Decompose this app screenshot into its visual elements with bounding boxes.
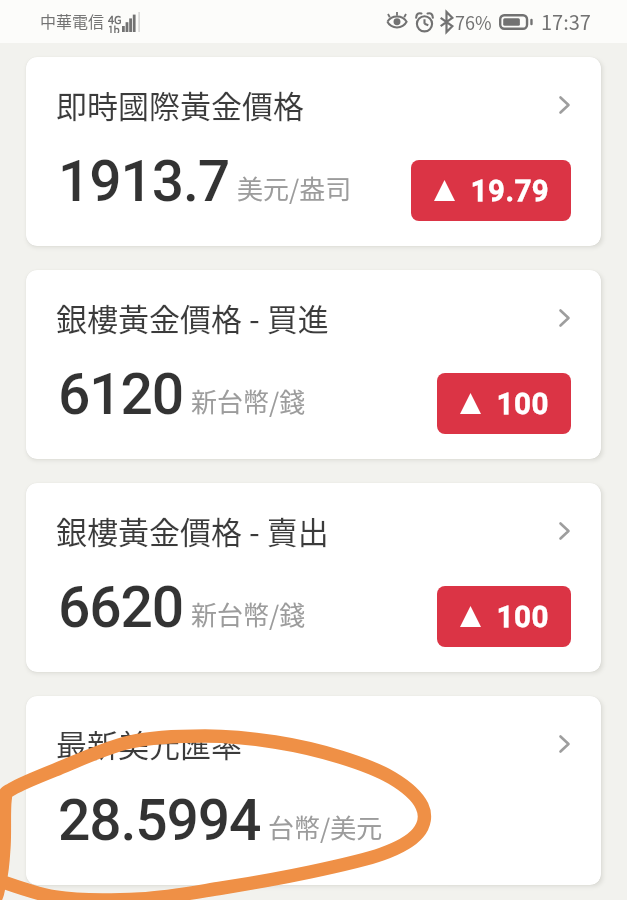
staticText: 台幣/美元 <box>268 808 383 846</box>
staticText: 1913.7 <box>58 148 230 215</box>
staticText: 銀樓黃金價格 - 買進 <box>56 295 329 340</box>
staticText: 6120 <box>58 361 184 428</box>
button[interactable]: 100 <box>437 586 571 647</box>
button[interactable]: 100 <box>437 373 571 434</box>
button[interactable]: Open details <box>549 303 579 333</box>
button[interactable]: 銀樓黃金價格 - 買進 <box>26 270 601 459</box>
staticText: 100 <box>497 600 550 634</box>
button[interactable]: Open details <box>549 516 579 546</box>
button[interactable]: 即時國際黃金價格 <box>26 57 601 246</box>
staticText: 100 <box>497 387 550 421</box>
staticText: 新台幣/錢 <box>191 595 306 633</box>
button[interactable]: Open details <box>549 90 579 120</box>
staticText: 76% <box>455 9 492 35</box>
button[interactable]: Open details <box>549 729 579 759</box>
staticText: 6620 <box>58 574 184 641</box>
staticText: 17:37 <box>541 7 591 36</box>
staticText: 即時國際黃金價格 <box>56 82 304 127</box>
staticText: 28.5994 <box>58 787 261 854</box>
staticText: 1b. <box>108 22 122 33</box>
button[interactable]: 19.79 <box>411 160 571 221</box>
staticText: 4G <box>108 11 122 27</box>
staticText: 美元/盎司 <box>237 169 352 207</box>
button[interactable]: 銀樓黃金價格 - 賣出 <box>26 483 601 672</box>
staticText: 中華電信 <box>40 9 105 32</box>
staticText: 新台幣/錢 <box>191 382 306 420</box>
staticText: 19.79 <box>471 174 550 208</box>
staticText: 最新美元匯率 <box>56 721 242 766</box>
button[interactable]: 最新美元匯率 <box>26 696 601 885</box>
staticText: 銀樓黃金價格 - 賣出 <box>56 508 329 553</box>
